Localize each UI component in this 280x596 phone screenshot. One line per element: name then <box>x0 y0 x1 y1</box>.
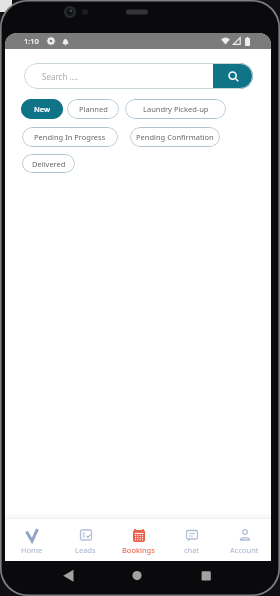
staticText: chat <box>184 545 200 555</box>
staticText: Account <box>230 545 259 555</box>
staticText: Pending Confirmation <box>136 132 214 142</box>
staticText: New <box>34 104 51 114</box>
button[interactable]: New <box>21 99 63 119</box>
button[interactable]: Account <box>218 519 271 561</box>
staticText: Bookings <box>122 545 155 555</box>
button[interactable]: Home <box>5 519 59 561</box>
staticText: Pending In Progress <box>34 132 106 142</box>
staticText: Leads <box>75 545 96 555</box>
button[interactable] <box>213 63 253 89</box>
staticText: Laundry Picked-up <box>143 104 209 114</box>
staticText: Search .... <box>42 71 78 82</box>
staticText: Planned <box>79 104 108 114</box>
button[interactable]: Search .... <box>24 63 253 89</box>
button[interactable]: Pending Confirmation <box>130 127 220 147</box>
button[interactable]: Bookings <box>112 519 165 561</box>
button[interactable]: Delivered <box>22 154 75 173</box>
button[interactable]: Laundry Picked-up <box>125 99 226 119</box>
staticText: 1:10 <box>24 36 39 46</box>
button[interactable]: Leads <box>59 519 112 561</box>
button[interactable]: Pending In Progress <box>22 127 118 147</box>
button[interactable]: Planned <box>67 99 119 119</box>
button[interactable]: chat <box>165 519 218 561</box>
staticText: Delivered <box>32 159 66 169</box>
staticText: Home <box>21 545 43 555</box>
